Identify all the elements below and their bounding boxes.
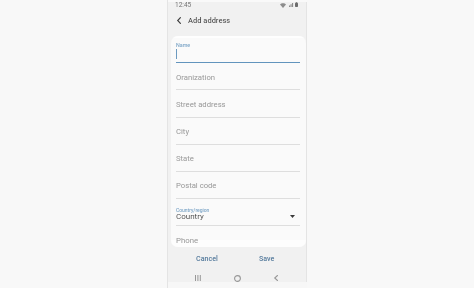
staticText: Add address <box>188 16 231 25</box>
staticText: 12:45 <box>175 1 192 9</box>
staticText: City <box>176 127 190 136</box>
staticText: Cancel <box>196 254 218 262</box>
button[interactable] <box>176 230 300 247</box>
button[interactable]: Home <box>229 270 245 286</box>
button[interactable]: Back <box>268 270 284 286</box>
staticText: Country <box>176 212 204 221</box>
button[interactable]: Cancel <box>186 251 228 265</box>
button[interactable]: Save <box>246 251 288 265</box>
button[interactable]: Navigate up <box>172 13 186 27</box>
button[interactable] <box>176 95 300 117</box>
staticText: Postal code <box>176 181 217 190</box>
staticText: State <box>176 154 194 163</box>
staticText: Country/region <box>176 207 210 213</box>
button[interactable]: Recent apps <box>190 270 206 286</box>
button[interactable] <box>176 203 300 225</box>
button[interactable] <box>176 122 300 144</box>
staticText: Name <box>176 42 191 48</box>
staticText: Oranization <box>176 73 216 82</box>
button[interactable] <box>176 176 300 198</box>
button[interactable] <box>176 67 300 89</box>
button[interactable] <box>176 149 300 171</box>
staticText: Phone <box>176 236 199 245</box>
staticText: Save <box>259 254 275 262</box>
button[interactable] <box>176 40 300 62</box>
staticText: Street address <box>176 100 226 109</box>
